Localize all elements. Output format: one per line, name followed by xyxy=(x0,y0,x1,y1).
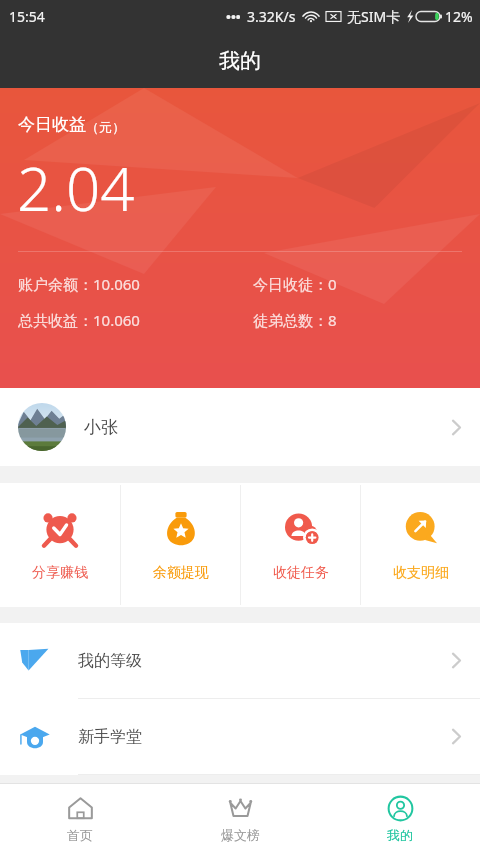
staticText: 我的 xyxy=(219,48,261,74)
staticText: 分享赚钱 xyxy=(32,564,88,582)
staticText: 我的 xyxy=(387,827,413,843)
button[interactable]: 分享赚钱 xyxy=(0,483,120,607)
staticText: 总共收益：10.060 xyxy=(18,310,140,330)
button[interactable]: 首页 xyxy=(0,784,160,853)
staticText: 我的等级 xyxy=(78,651,142,671)
staticText: 15:54 xyxy=(9,7,45,26)
staticText: 无SIM卡 xyxy=(347,7,401,26)
staticText: 徒弟总数：8 xyxy=(253,310,337,330)
button[interactable]: 新手学堂 xyxy=(0,699,480,774)
staticText: 收支明细 xyxy=(393,564,449,582)
button[interactable]: 收支明细 xyxy=(361,483,480,607)
staticText: 12% xyxy=(445,7,473,26)
staticText: 新手学堂 xyxy=(78,727,142,747)
button[interactable]: 余额提现 xyxy=(121,483,240,607)
staticText: （元） xyxy=(86,119,125,135)
staticText: 小张 xyxy=(84,417,118,438)
button[interactable]: 我的 xyxy=(320,784,480,853)
button[interactable]: 收徒任务 xyxy=(241,483,360,607)
staticText: 3.32K/s xyxy=(247,7,296,26)
staticText: 收徒任务 xyxy=(273,564,329,582)
button[interactable]: 爆文榜 xyxy=(160,784,320,853)
button[interactable]: 我的等级 xyxy=(0,623,480,698)
staticText: 首页 xyxy=(67,827,93,843)
staticText: 今日收徒：0 xyxy=(253,274,337,294)
staticText: 今日收益 xyxy=(18,114,86,135)
staticText: 爆文榜 xyxy=(221,827,260,843)
staticText: 账户余额：10.060 xyxy=(18,274,140,294)
staticText: ••• xyxy=(226,8,241,26)
staticText: 2.04 xyxy=(17,147,135,229)
staticText: 余额提现 xyxy=(153,564,209,582)
button[interactable]: 小张 xyxy=(0,388,480,466)
